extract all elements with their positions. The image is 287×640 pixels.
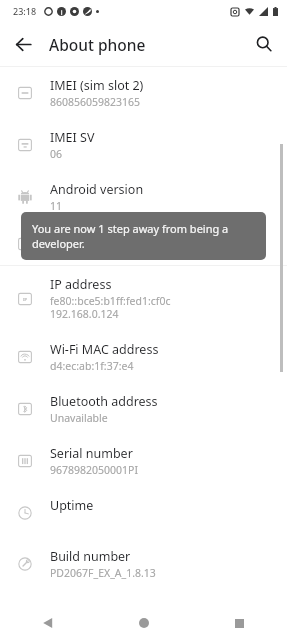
- button[interactable]: Back: [5, 26, 41, 62]
- staticText: Serial number: [50, 445, 133, 462]
- staticText: Unavailable: [50, 411, 108, 425]
- staticText: IMEI (sim slot 2): [50, 77, 144, 94]
- staticText: 11: [50, 199, 63, 213]
- button[interactable]: Home: [124, 606, 164, 640]
- button[interactable]: Wi-Fi MAC address: [0, 331, 287, 383]
- button[interactable]: You are now 1 step away from being a dev…: [21, 212, 266, 260]
- button[interactable]: CPU: [0, 223, 287, 265]
- staticText: IMEI SV: [50, 129, 95, 146]
- staticText: Wi-Fi MAC address: [50, 341, 159, 358]
- button[interactable]: Recent apps: [219, 606, 259, 640]
- staticText: fe80::bce5:b1ff:fed1:cf0c 192.168.0.124: [50, 294, 171, 321]
- staticText: 9678982050001PI: [50, 463, 138, 477]
- staticText: 860856059823165: [50, 95, 141, 109]
- button[interactable]: Bluetooth address: [0, 383, 287, 435]
- staticText: Bluetooth address: [50, 393, 158, 410]
- button[interactable]: IMEI (sim slot 2): [0, 67, 287, 119]
- staticText: 06: [50, 147, 63, 161]
- button[interactable]: IMEI SV: [0, 119, 287, 171]
- staticText: You are now 1 step away from being a dev…: [32, 221, 255, 251]
- button[interactable]: Search: [246, 26, 282, 62]
- staticText: PD2067F_EX_A_1.8.13: [50, 566, 156, 580]
- staticText: 23:18: [13, 5, 37, 17]
- staticText: d4:ec:ab:1f:37:e4: [50, 359, 134, 373]
- button[interactable]: Serial number: [0, 435, 287, 487]
- staticText: Android version: [50, 181, 144, 198]
- button[interactable]: Uptime: [0, 487, 287, 538]
- staticText: Uptime: [50, 497, 94, 514]
- staticText: CPU real-time data: [50, 236, 161, 253]
- button[interactable]: Android version: [0, 171, 287, 223]
- button[interactable]: IP: [0, 266, 287, 331]
- staticText: About phone: [49, 34, 146, 55]
- button[interactable]: Build number: [0, 538, 287, 590]
- button[interactable]: Back: [28, 606, 68, 640]
- staticText: Build number: [50, 548, 131, 565]
- staticText: IP address: [50, 276, 112, 293]
- staticText: IP: [23, 297, 28, 302]
